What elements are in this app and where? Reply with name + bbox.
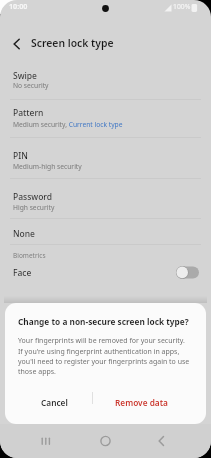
button[interactable]: Remove data	[98, 387, 184, 418]
button[interactable]: Password	[0, 178, 211, 218]
button[interactable]	[95, 430, 117, 452]
staticText: Remove data	[115, 397, 168, 408]
staticText: Biometrics	[13, 251, 46, 260]
staticText: Change to a non-secure screen lock type?	[18, 316, 189, 327]
staticText: Cancel	[41, 397, 68, 408]
button[interactable]	[34, 430, 56, 452]
button[interactable]: Pattern	[0, 100, 211, 137]
staticText: Medium security, Current lock type	[13, 120, 123, 129]
staticText: 100%	[173, 2, 191, 11]
staticText: Pattern	[13, 107, 44, 119]
staticText: None	[13, 228, 35, 240]
staticText: Medium-high security	[13, 162, 82, 171]
button[interactable]: Cancel	[17, 387, 91, 418]
staticText: High security	[13, 203, 55, 212]
staticText: Swipe	[13, 70, 37, 82]
button[interactable]	[6, 33, 28, 55]
staticText: Password	[13, 191, 53, 203]
staticText: PIN	[13, 150, 28, 162]
button[interactable]: None	[0, 218, 211, 244]
button[interactable]: Swipe	[0, 60, 211, 99]
button[interactable]	[152, 430, 174, 452]
staticText: Your fingerprints will be removed for yo…	[18, 336, 190, 376]
staticText: 10:00	[9, 1, 28, 11]
button[interactable]: Face	[0, 262, 211, 284]
staticText: Face	[13, 267, 32, 279]
button[interactable]: PIN	[0, 137, 211, 178]
staticText: No security	[13, 81, 49, 90]
staticText: Screen lock type	[31, 36, 114, 50]
